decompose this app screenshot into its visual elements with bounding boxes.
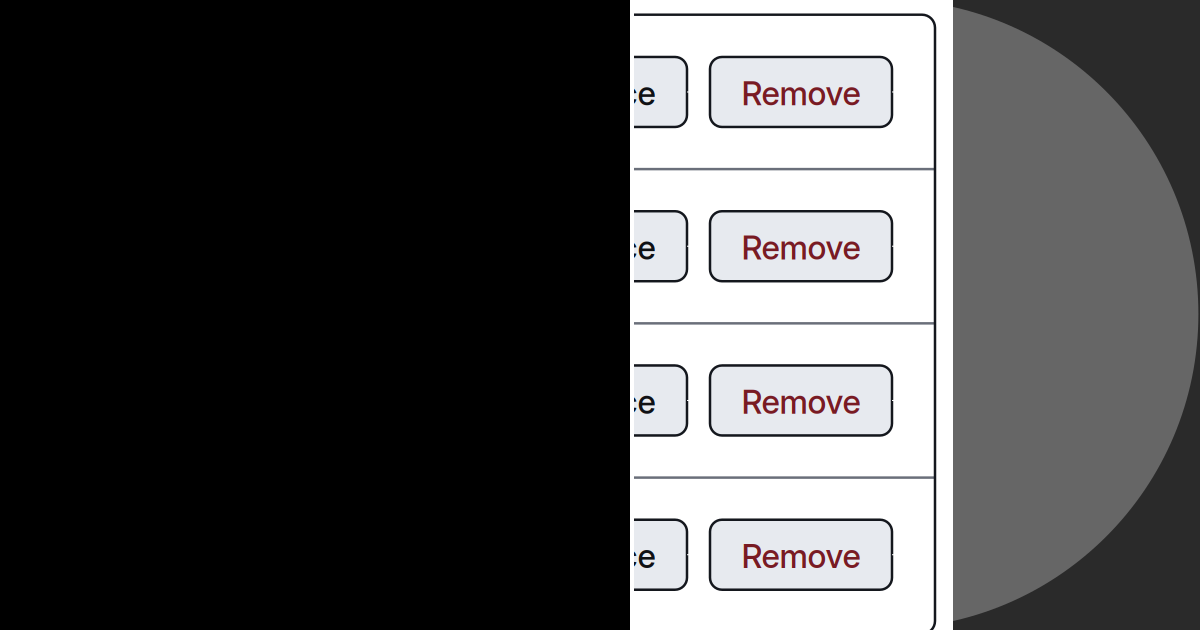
staticText: Remove [741, 228, 860, 267]
staticText: Replace [536, 382, 655, 422]
button[interactable]: Remove [710, 365, 892, 435]
staticText: Replace [536, 74, 655, 113]
staticText: Replace [536, 228, 655, 267]
button[interactable]: Replace [505, 57, 687, 127]
button[interactable]: Remove [710, 57, 892, 127]
button[interactable]: Remove [710, 211, 892, 281]
staticText: Remove [741, 74, 860, 113]
button[interactable]: Replace [505, 365, 687, 435]
button[interactable]: Remove [710, 520, 892, 590]
staticText: Remove [741, 536, 860, 576]
button[interactable]: Replace [505, 211, 687, 281]
button[interactable]: Replace [505, 520, 687, 590]
staticText: Remove [741, 382, 860, 422]
staticText: Replace [536, 536, 655, 576]
